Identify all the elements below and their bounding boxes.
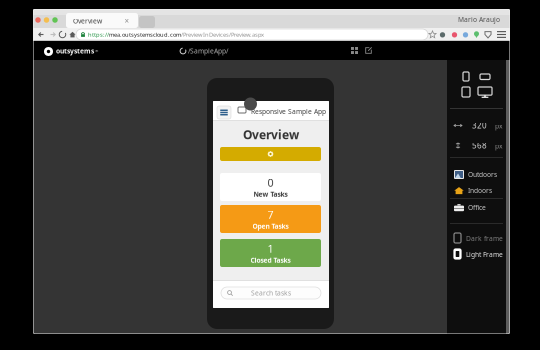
staticText: Indoors (468, 186, 492, 195)
staticText: /SampleApp/ (188, 47, 228, 55)
staticText: px (495, 122, 503, 130)
staticText: Search tasks (251, 289, 291, 297)
button[interactable]: Dark frame (454, 232, 506, 244)
staticText: Open Tasks (252, 222, 288, 231)
staticText: px (495, 142, 503, 150)
button[interactable]: Phone portrait (463, 72, 469, 81)
button[interactable]: Phone landscape (480, 74, 490, 79)
button[interactable]: Light Frame (454, 248, 506, 260)
button[interactable]: Extension (462, 31, 469, 38)
button[interactable]: OutSystems (41, 43, 131, 58)
button[interactable]: Add task (220, 147, 321, 161)
button[interactable]: Extension (473, 31, 480, 38)
button[interactable]: Chrome menu (497, 30, 506, 39)
button[interactable]: Device grid (351, 47, 358, 54)
staticText: New Tasks (253, 190, 287, 199)
button[interactable]: Forward (48, 30, 57, 39)
staticText: 320 (472, 120, 487, 131)
button[interactable]: Extension (439, 31, 446, 38)
staticText: Responsive Sample App (251, 107, 326, 116)
button[interactable]: Reload (58, 30, 67, 39)
button[interactable]: Tablet (462, 87, 470, 97)
button[interactable]: Open in new window (365, 47, 372, 54)
button[interactable]: Indoors (453, 184, 505, 196)
staticText: Light Frame (466, 250, 503, 259)
button[interactable]: Bookmark (428, 30, 437, 39)
button[interactable]: Back (37, 30, 46, 39)
button[interactable]: Search tasks (221, 287, 321, 299)
button[interactable]: Desktop (478, 87, 492, 98)
staticText: 568 (472, 140, 487, 151)
staticText: Overview (73, 17, 102, 25)
button[interactable]: https:// (76, 29, 428, 40)
staticText: 7 (267, 207, 273, 222)
staticText: /PreviewInDevices/Preview.aspx (181, 31, 264, 38)
staticText: 1 (267, 241, 273, 256)
staticText: Closed Tasks (250, 256, 290, 265)
button[interactable]: 0 (220, 173, 321, 201)
button[interactable]: Privacy (484, 30, 492, 39)
staticText: mea.outsystemscloud.com (109, 31, 181, 38)
staticText: outsystems (56, 47, 94, 55)
button[interactable]: Outdoors (453, 168, 505, 180)
staticText: × (124, 16, 129, 26)
staticText: https:// (88, 31, 109, 38)
button[interactable]: Reload preview (179, 47, 187, 55)
staticText: ® (95, 48, 98, 54)
button[interactable]: 7 (220, 205, 321, 233)
button[interactable]: 1 (220, 239, 321, 267)
staticText: Outdoors (468, 170, 497, 179)
button[interactable]: Menu (217, 106, 231, 119)
button[interactable]: Overview (66, 13, 138, 28)
staticText: Office (468, 203, 486, 212)
button[interactable]: Home (68, 30, 77, 39)
button[interactable]: Extension (451, 31, 458, 38)
staticText: Mario Araujo (458, 15, 500, 24)
button[interactable]: Office (453, 201, 505, 213)
staticText: Dark frame (466, 234, 503, 243)
staticText: 0 (267, 175, 273, 190)
staticText: Overview (243, 126, 299, 142)
